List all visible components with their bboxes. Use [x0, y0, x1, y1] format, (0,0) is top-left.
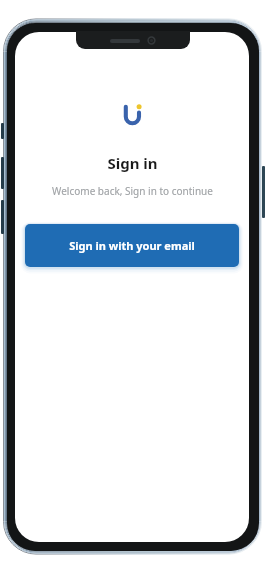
- staticText: Sign in: [107, 153, 158, 173]
- staticText: Welcome back, Sign in to continue: [52, 184, 213, 198]
- button[interactable]: Sign in with your email: [25, 224, 239, 267]
- staticText: Sign in with your email: [69, 238, 195, 253]
